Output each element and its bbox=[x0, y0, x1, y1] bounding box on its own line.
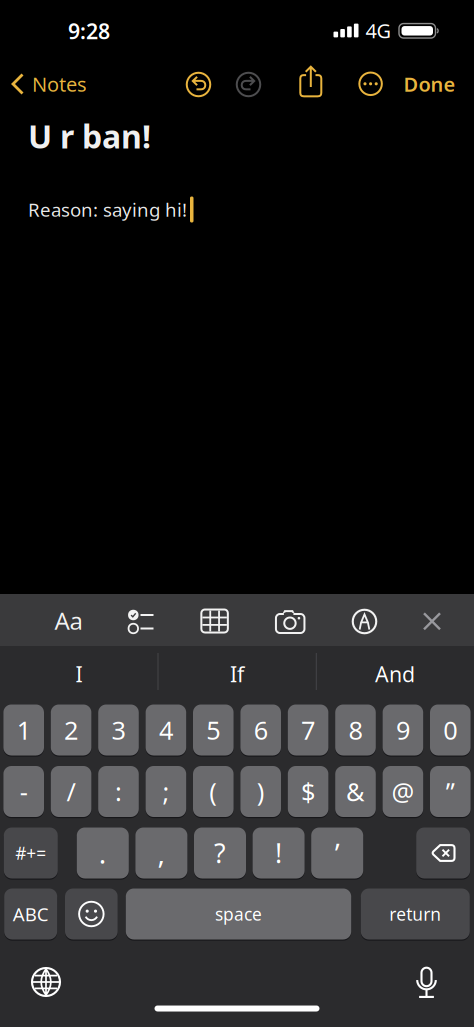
staticText: I bbox=[75, 660, 82, 688]
staticText: 8 bbox=[348, 713, 362, 747]
staticText: return bbox=[389, 902, 441, 925]
staticText: 9:28 bbox=[68, 17, 110, 45]
staticText: 7 bbox=[301, 713, 315, 747]
staticText: ) bbox=[257, 775, 265, 808]
staticText: 1 bbox=[17, 713, 31, 747]
button[interactable]: 4 bbox=[146, 704, 186, 756]
button[interactable]: Undo bbox=[186, 72, 210, 96]
button[interactable]: : bbox=[98, 765, 139, 817]
button[interactable]: 6 bbox=[240, 704, 281, 756]
button[interactable]: 9 bbox=[383, 704, 423, 756]
button[interactable]: . bbox=[77, 827, 129, 879]
staticText: , bbox=[157, 834, 165, 872]
button[interactable]: Markup bbox=[353, 610, 376, 633]
staticText: U r ban! bbox=[28, 115, 151, 157]
button[interactable]: ! bbox=[253, 827, 305, 879]
button[interactable]: $ bbox=[288, 765, 328, 817]
staticText: ! bbox=[275, 835, 282, 871]
button[interactable]: 0 bbox=[430, 704, 471, 756]
button[interactable]: Emoji bbox=[65, 888, 118, 940]
button[interactable]: ABC bbox=[4, 888, 57, 940]
button[interactable]: Share bbox=[299, 65, 322, 97]
button[interactable]: ( bbox=[193, 765, 234, 817]
button[interactable]: Next keyboard bbox=[32, 968, 60, 996]
button[interactable]: Delete bbox=[416, 827, 470, 879]
staticText: $ bbox=[301, 775, 315, 808]
button[interactable]: ) bbox=[240, 765, 281, 817]
staticText: And bbox=[375, 660, 415, 688]
staticText: & bbox=[346, 775, 365, 808]
staticText: 5 bbox=[206, 713, 220, 747]
button[interactable]: / bbox=[51, 765, 91, 817]
staticText: 2 bbox=[64, 713, 78, 747]
staticText: Done bbox=[403, 71, 455, 97]
staticText: Reason: saying hi! bbox=[28, 197, 187, 222]
staticText: . bbox=[99, 834, 107, 872]
staticText: @ bbox=[391, 775, 414, 808]
button[interactable]: return bbox=[361, 888, 470, 940]
button[interactable]: Dictate bbox=[416, 967, 436, 998]
button[interactable]: Camera bbox=[276, 610, 304, 633]
button[interactable]: More bbox=[359, 72, 383, 96]
button[interactable]: & bbox=[335, 765, 376, 817]
button[interactable]: ’ bbox=[311, 827, 363, 879]
button[interactable]: space bbox=[126, 888, 351, 940]
staticText: - bbox=[20, 775, 28, 808]
button[interactable]: Notes bbox=[11, 71, 87, 97]
button[interactable]: I bbox=[4, 651, 154, 697]
staticText: Notes bbox=[32, 71, 87, 97]
button[interactable]: 3 bbox=[98, 704, 139, 756]
button[interactable]: And bbox=[320, 651, 470, 697]
staticText: : bbox=[115, 775, 122, 808]
staticText: ( bbox=[209, 775, 217, 808]
staticText: ; bbox=[162, 775, 169, 808]
button[interactable]: Table bbox=[201, 609, 228, 632]
staticText: ” bbox=[446, 775, 455, 808]
button[interactable]: ” bbox=[430, 765, 471, 817]
button[interactable]: ; bbox=[146, 765, 186, 817]
staticText: #+= bbox=[15, 841, 46, 864]
staticText: 9 bbox=[396, 713, 410, 747]
staticText: 4G bbox=[365, 17, 391, 44]
button[interactable]: 7 bbox=[288, 704, 328, 756]
staticText: 4 bbox=[159, 713, 173, 747]
button[interactable]: Done bbox=[403, 71, 455, 97]
button[interactable]: 5 bbox=[193, 704, 234, 756]
button[interactable]: , bbox=[135, 827, 187, 879]
button[interactable]: If bbox=[162, 651, 312, 697]
staticText: If bbox=[230, 660, 244, 688]
button[interactable]: Checklist bbox=[127, 609, 153, 633]
button[interactable]: - bbox=[3, 765, 44, 817]
staticText: 0 bbox=[443, 713, 457, 747]
button[interactable]: Format bbox=[54, 605, 82, 636]
button[interactable]: 2 bbox=[51, 704, 91, 756]
staticText: 3 bbox=[111, 713, 125, 747]
staticText: space bbox=[215, 902, 262, 925]
button[interactable]: Redo bbox=[236, 72, 260, 96]
staticText: / bbox=[67, 775, 76, 808]
button[interactable]: 8 bbox=[335, 704, 376, 756]
staticText: ? bbox=[214, 835, 226, 871]
button[interactable]: #+= bbox=[4, 827, 58, 879]
button[interactable]: ? bbox=[194, 827, 246, 879]
staticText: ABC bbox=[13, 902, 49, 926]
button[interactable]: @ bbox=[383, 765, 423, 817]
staticText: 6 bbox=[254, 713, 268, 747]
staticText: Aa bbox=[54, 605, 82, 636]
button[interactable]: Close bbox=[423, 612, 441, 630]
staticText: ’ bbox=[335, 834, 340, 872]
button[interactable]: 1 bbox=[3, 704, 44, 756]
